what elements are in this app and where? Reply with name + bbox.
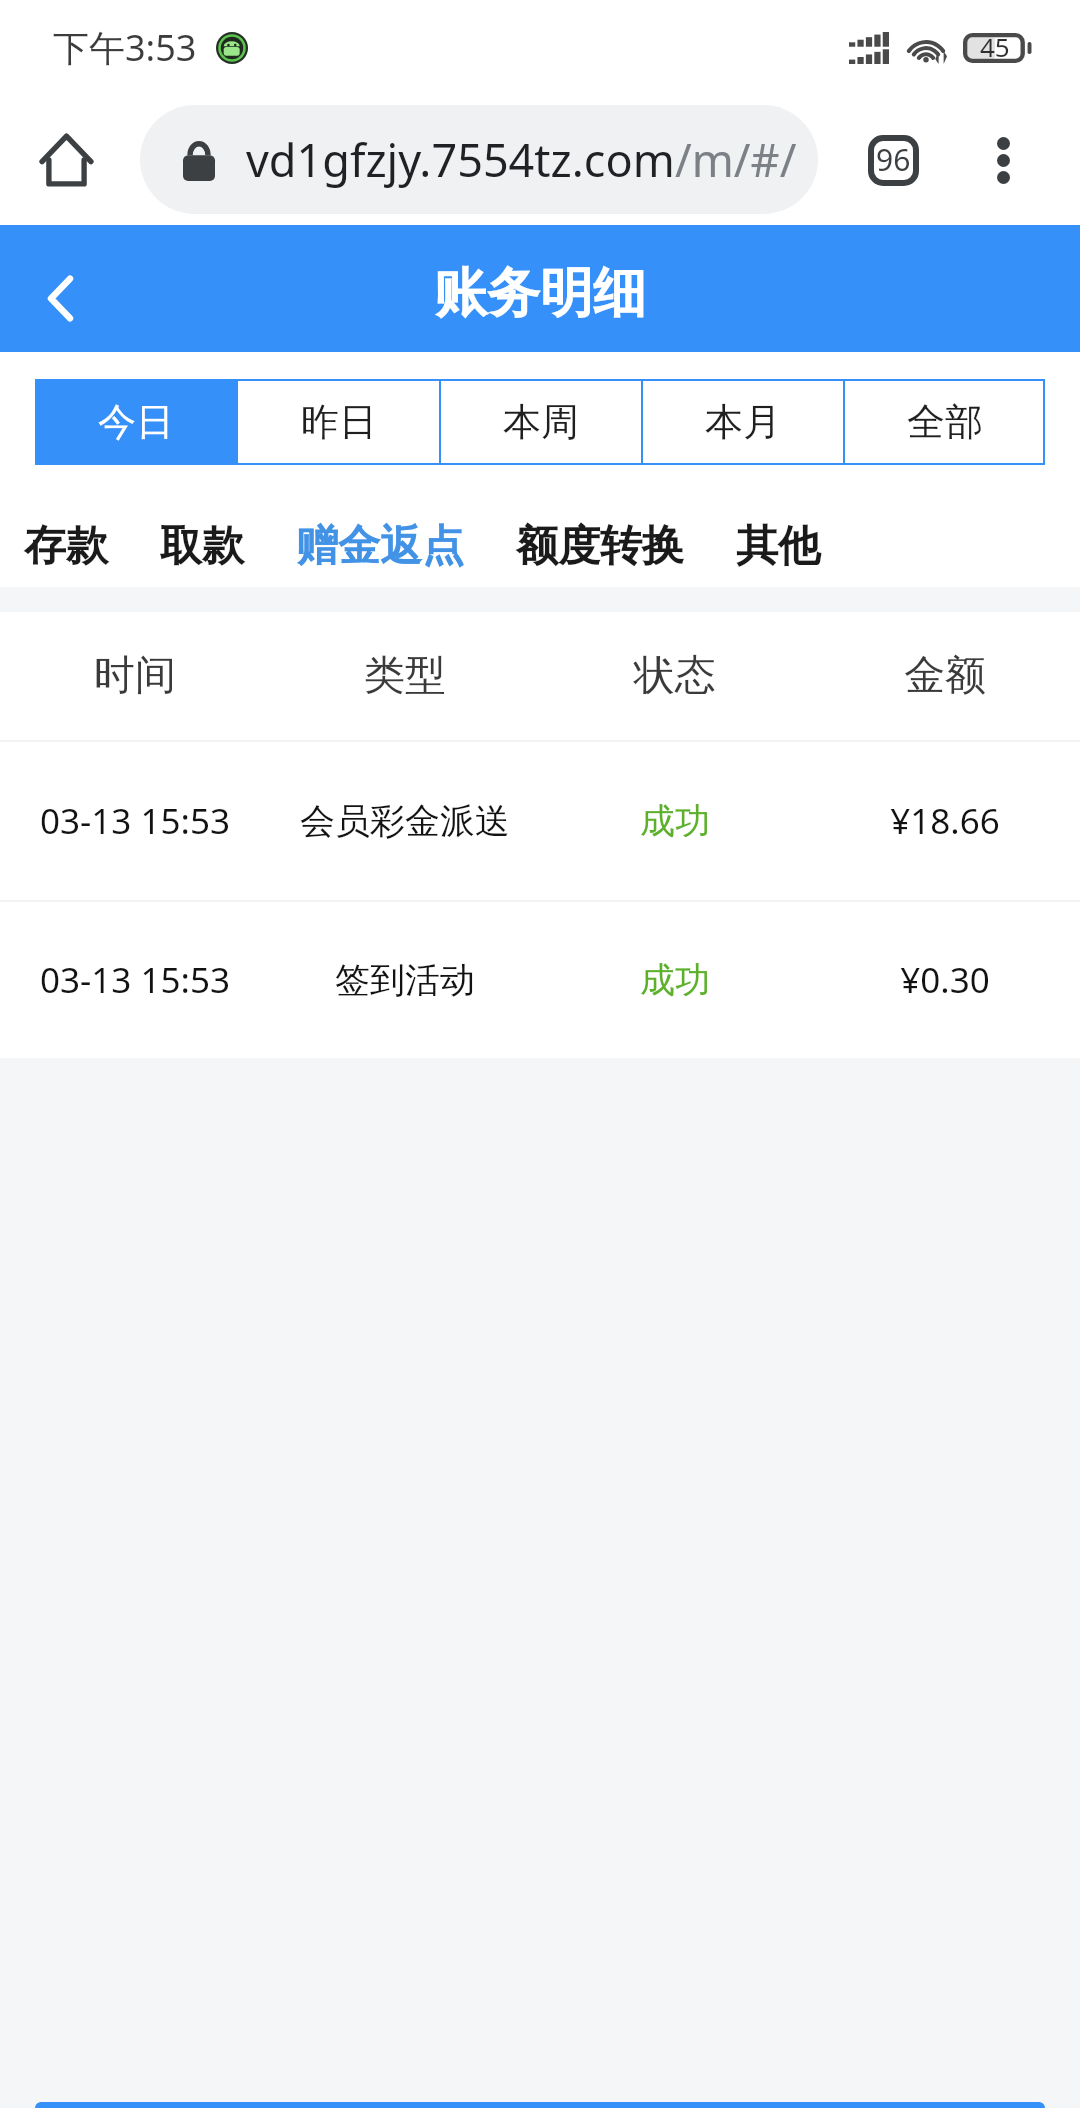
staticText: vd1gfzjy.7554tz.com (246, 129, 675, 190)
staticText: 成功 (540, 799, 810, 843)
staticText: 账务明细 (434, 260, 646, 327)
staticText: /m/#/ (675, 129, 797, 190)
staticText: 45 (980, 29, 1010, 64)
button[interactable]: 03-13 15:53 (0, 742, 1080, 900)
button[interactable]: 额度转换 (516, 506, 684, 587)
staticText: 本周 (503, 398, 579, 446)
button[interactable]: 存款 (24, 506, 108, 587)
staticText: 时间 (0, 650, 270, 702)
staticText: 状态 (540, 650, 810, 702)
button[interactable]: Tabs (855, 122, 931, 198)
staticText: 金额 (810, 650, 1080, 702)
staticText: 下午3:53 (53, 23, 197, 72)
staticText: 额度转换 (516, 520, 684, 573)
staticText: 03-13 15:53 (0, 956, 270, 1004)
staticText: 03-13 15:53 (0, 797, 270, 845)
staticText: 取款 (160, 520, 244, 573)
staticText: ¥18.66 (810, 797, 1080, 845)
button[interactable]: 本月 (643, 379, 843, 465)
button[interactable]: 今日 (35, 379, 236, 465)
staticText: 其他 (736, 520, 820, 573)
staticText: 本月 (705, 398, 781, 446)
button[interactable]: 全部 (845, 379, 1045, 465)
button[interactable]: 本周 (441, 379, 641, 465)
staticText: 会员彩金派送 (270, 799, 540, 843)
staticText: 成功 (540, 958, 810, 1002)
button[interactable]: Home (31, 125, 101, 195)
button[interactable] (35, 2102, 1045, 2108)
button[interactable]: 赠金返点 (296, 506, 464, 587)
staticText: 类型 (270, 650, 540, 702)
button[interactable]: Back (23, 261, 97, 335)
button[interactable]: 03-13 15:53 (0, 902, 1080, 1058)
staticText: 存款 (24, 520, 108, 573)
staticText: 全部 (907, 398, 983, 446)
staticText: 96 (876, 139, 911, 180)
button[interactable]: 其他 (736, 506, 820, 587)
staticText: 昨日 (301, 398, 377, 446)
staticText: ¥0.30 (810, 956, 1080, 1004)
button[interactable]: vd1gfzjy.7554tz.com (140, 105, 818, 214)
staticText: 赠金返点 (296, 520, 464, 573)
staticText: 今日 (98, 398, 174, 446)
button[interactable]: 昨日 (238, 379, 439, 465)
button[interactable]: More options (968, 125, 1038, 195)
button[interactable]: 取款 (160, 506, 244, 587)
staticText: 签到活动 (270, 958, 540, 1002)
